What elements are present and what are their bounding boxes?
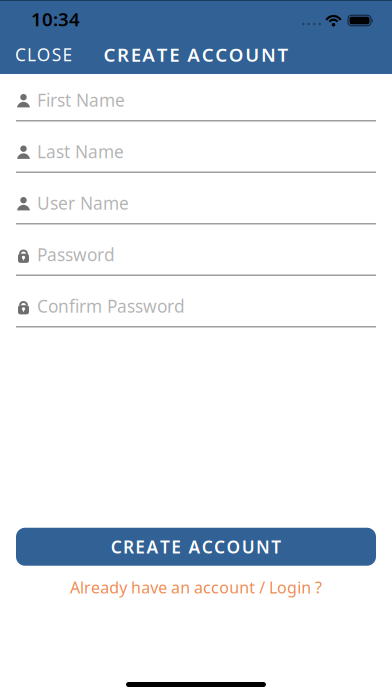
staticText: i [297, 577, 301, 598]
staticText: o [219, 577, 229, 598]
staticText: R [117, 42, 129, 67]
staticText: a [100, 577, 109, 598]
staticText: h [131, 577, 141, 598]
staticText: S [52, 43, 62, 66]
button[interactable]: User Name [16, 193, 376, 224]
button[interactable]: Create Account [16, 528, 376, 566]
staticText: a [171, 577, 180, 598]
staticText: C [111, 535, 122, 558]
staticText: e [158, 577, 167, 598]
staticText: c [203, 577, 211, 598]
staticText: Confirm Password [37, 294, 185, 317]
staticText: E [171, 535, 181, 558]
staticText: U [242, 535, 255, 558]
button[interactable]: Confirm Password [16, 296, 376, 327]
staticText: First Name [37, 88, 125, 111]
staticText: N [261, 42, 276, 67]
staticText: ? [315, 577, 322, 598]
staticText: E [131, 42, 141, 67]
staticText: A [188, 535, 200, 558]
staticText: User Name [37, 191, 129, 214]
staticText: U [245, 42, 259, 67]
staticText: o [277, 577, 287, 598]
staticText: v [150, 577, 158, 598]
staticText: A [147, 535, 159, 558]
staticText: l [80, 577, 84, 598]
staticText: O [226, 535, 240, 558]
staticText: n [239, 577, 249, 598]
staticText: a [194, 577, 203, 598]
staticText: C [103, 42, 115, 67]
staticText: A [142, 42, 155, 67]
staticText: C [214, 535, 225, 558]
staticText: N [256, 535, 270, 558]
button[interactable]: Password [16, 244, 376, 276]
staticText: 10:34 [31, 7, 80, 31]
staticText: a [141, 577, 150, 598]
staticText: y [119, 577, 127, 598]
staticText: L [269, 577, 277, 598]
button[interactable]: First Name [16, 90, 376, 121]
staticText: / [259, 577, 265, 598]
staticText: e [91, 577, 100, 598]
staticText: T [160, 535, 170, 558]
staticText: c [211, 577, 219, 598]
staticText: E [169, 42, 179, 67]
staticText: C [202, 42, 214, 67]
staticText: O [37, 43, 51, 66]
button[interactable]: Already have an account / Login ? [70, 577, 322, 598]
staticText: C [15, 43, 26, 66]
staticText: E [63, 43, 73, 66]
staticText: R [123, 535, 134, 558]
staticText: T [157, 42, 168, 67]
staticText: L [27, 43, 36, 66]
staticText: n [301, 577, 311, 598]
staticText: T [271, 535, 281, 558]
staticText: u [229, 577, 239, 598]
staticText: g [287, 577, 297, 598]
staticText: n [180, 577, 190, 598]
staticText: r [84, 577, 91, 598]
button[interactable]: Close [0, 43, 73, 66]
staticText: T [277, 42, 288, 67]
staticText: d [109, 577, 119, 598]
button[interactable]: Last Name [16, 141, 376, 173]
staticText: A [70, 577, 80, 598]
staticText: C [202, 535, 213, 558]
staticText: Password [37, 243, 115, 266]
staticText: O [229, 42, 244, 67]
staticText: t [249, 577, 255, 598]
staticText: E [135, 535, 145, 558]
staticText: Last Name [37, 140, 124, 163]
staticText: C [215, 42, 227, 67]
staticText: A [187, 42, 200, 67]
